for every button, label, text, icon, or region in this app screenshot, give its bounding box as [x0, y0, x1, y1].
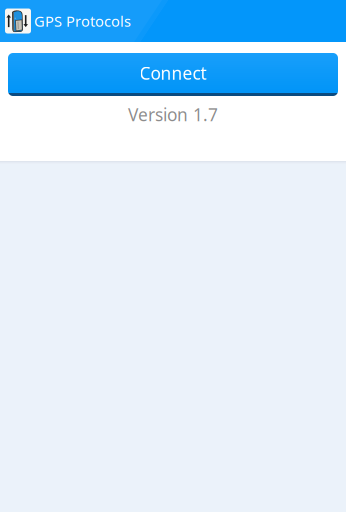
staticText: Version 1.7 [128, 103, 218, 126]
button[interactable]: Connect [8, 53, 338, 96]
staticText: GPS Protocols [34, 11, 131, 31]
staticText: Connect [139, 61, 206, 84]
